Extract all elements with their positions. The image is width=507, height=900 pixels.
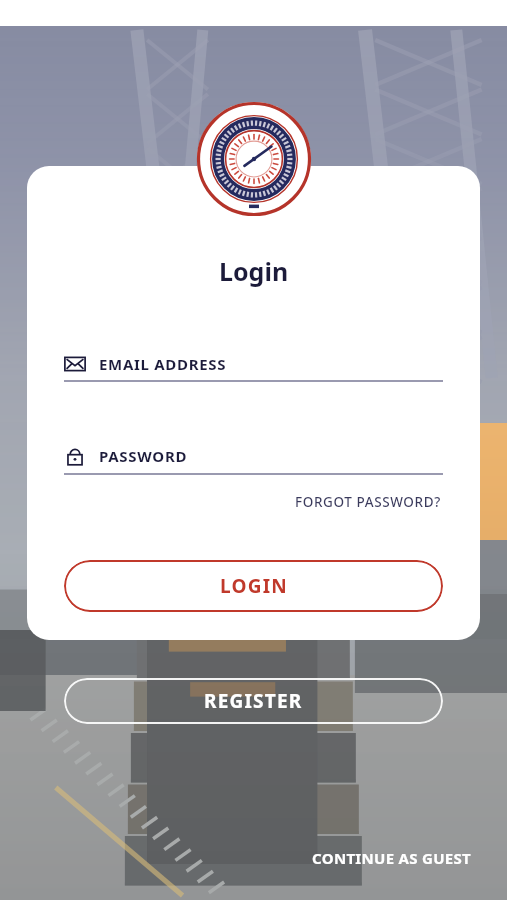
- other: IUOE logo: [197, 102, 311, 216]
- staticText: CONTINUE AS GUEST: [312, 848, 471, 868]
- button[interactable]: REGISTER: [64, 678, 443, 724]
- button[interactable]: FORGOT PASSWORD?: [293, 490, 443, 514]
- staticText: LOGIN: [220, 573, 288, 599]
- staticText: EMAIL ADDRESS: [99, 354, 227, 374]
- staticText: REGISTER: [204, 688, 303, 714]
- button[interactable]: CONTINUE AS GUEST: [306, 842, 477, 874]
- staticText: FORGOT PASSWORD?: [295, 493, 441, 511]
- button[interactable]: LOGIN: [64, 560, 443, 612]
- staticText: PASSWORD: [99, 446, 188, 466]
- button[interactable]: PASSWORD: [64, 438, 443, 474]
- button[interactable]: EMAIL ADDRESS: [64, 346, 443, 382]
- staticText: Login: [219, 254, 289, 288]
